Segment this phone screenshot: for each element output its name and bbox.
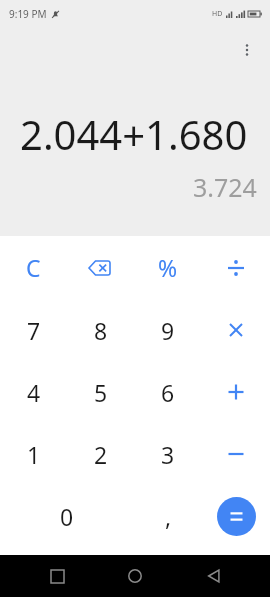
staticText: ,: [165, 501, 172, 532]
staticText: 5: [94, 377, 108, 408]
button[interactable]: 7: [0, 299, 67, 361]
button[interactable]: Home: [113, 555, 157, 597]
button[interactable]: 8: [67, 299, 134, 361]
button[interactable]: Backspace: [67, 236, 134, 299]
staticText: 1: [27, 439, 41, 470]
button[interactable]: 2: [67, 423, 134, 485]
staticText: 7: [27, 315, 41, 346]
button[interactable]: ,: [134, 485, 202, 547]
button[interactable]: 6: [134, 361, 202, 423]
button[interactable]: 3: [134, 423, 202, 485]
staticText: 2: [94, 439, 108, 470]
button[interactable]: 1: [0, 423, 67, 485]
staticText: 9: [161, 315, 175, 346]
button[interactable]: 4: [0, 361, 67, 423]
button[interactable]: %: [134, 236, 202, 299]
staticText: 0: [60, 501, 74, 532]
staticText: 2.044+1.680: [20, 107, 248, 161]
button[interactable]: Minus: [202, 423, 270, 485]
staticText: %: [158, 252, 178, 283]
staticText: 3: [161, 439, 175, 470]
staticText: HD: [212, 9, 223, 19]
button[interactable]: 9: [134, 299, 202, 361]
staticText: 3.724: [193, 170, 257, 204]
button[interactable]: Multiply: [202, 299, 270, 361]
button[interactable]: Back: [192, 555, 236, 597]
button[interactable]: More options: [231, 34, 263, 66]
staticText: 8: [94, 315, 108, 346]
button[interactable]: Plus: [202, 361, 270, 423]
staticText: C: [26, 252, 41, 283]
button[interactable]: Equals: [217, 497, 256, 536]
staticText: 6: [161, 377, 175, 408]
button[interactable]: 0: [0, 485, 134, 547]
button[interactable]: Recent apps: [35, 555, 79, 597]
button[interactable]: 5: [67, 361, 134, 423]
staticText: 9:19 PM: [9, 7, 47, 21]
staticText: 4: [27, 377, 41, 408]
button[interactable]: Divide: [202, 236, 270, 299]
button[interactable]: C: [0, 236, 67, 299]
